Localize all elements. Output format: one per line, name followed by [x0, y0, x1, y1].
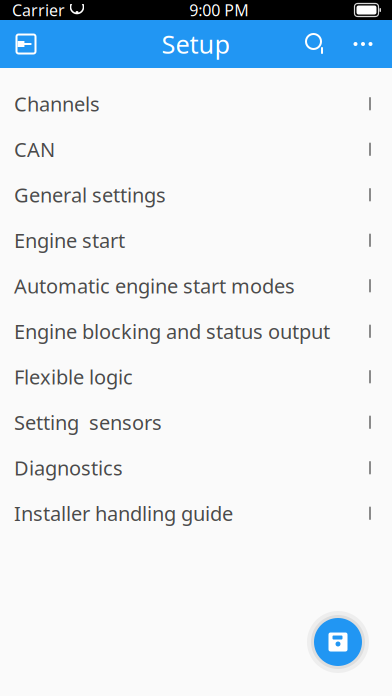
staticText: General settings	[14, 181, 166, 208]
staticText: 9:00 PM	[189, 0, 249, 21]
button[interactable]: General settings	[0, 172, 392, 217]
staticText: Setting sensors	[14, 409, 162, 436]
button[interactable]: Flexible logic	[0, 354, 392, 399]
button[interactable]: Back	[2, 20, 50, 68]
staticText: Automatic engine start modes	[14, 272, 295, 299]
staticText: Carrier	[12, 0, 65, 21]
staticText: Engine blocking and status output	[14, 318, 330, 345]
button[interactable]: Setting sensors	[0, 399, 392, 445]
button[interactable]: Search	[292, 20, 340, 68]
staticText: CAN	[14, 136, 55, 163]
button[interactable]: Channels	[0, 81, 392, 126]
staticText: Setup	[161, 27, 230, 61]
button[interactable]: Engine blocking and status output	[0, 308, 392, 354]
button[interactable]: Automatic engine start modes	[0, 263, 392, 308]
staticText: Diagnostics	[14, 454, 123, 481]
staticText: Channels	[14, 90, 100, 117]
staticText: Flexible logic	[14, 363, 133, 390]
button[interactable]: CAN	[0, 126, 392, 172]
button[interactable]: Diagnostics	[0, 445, 392, 490]
button[interactable]: Save	[306, 610, 370, 674]
staticText: Engine start	[14, 227, 125, 254]
button[interactable]: Installer handling guide	[0, 490, 392, 536]
button[interactable]: More options	[340, 20, 386, 68]
button[interactable]: Engine start	[0, 217, 392, 263]
staticText: Installer handling guide	[14, 500, 233, 527]
